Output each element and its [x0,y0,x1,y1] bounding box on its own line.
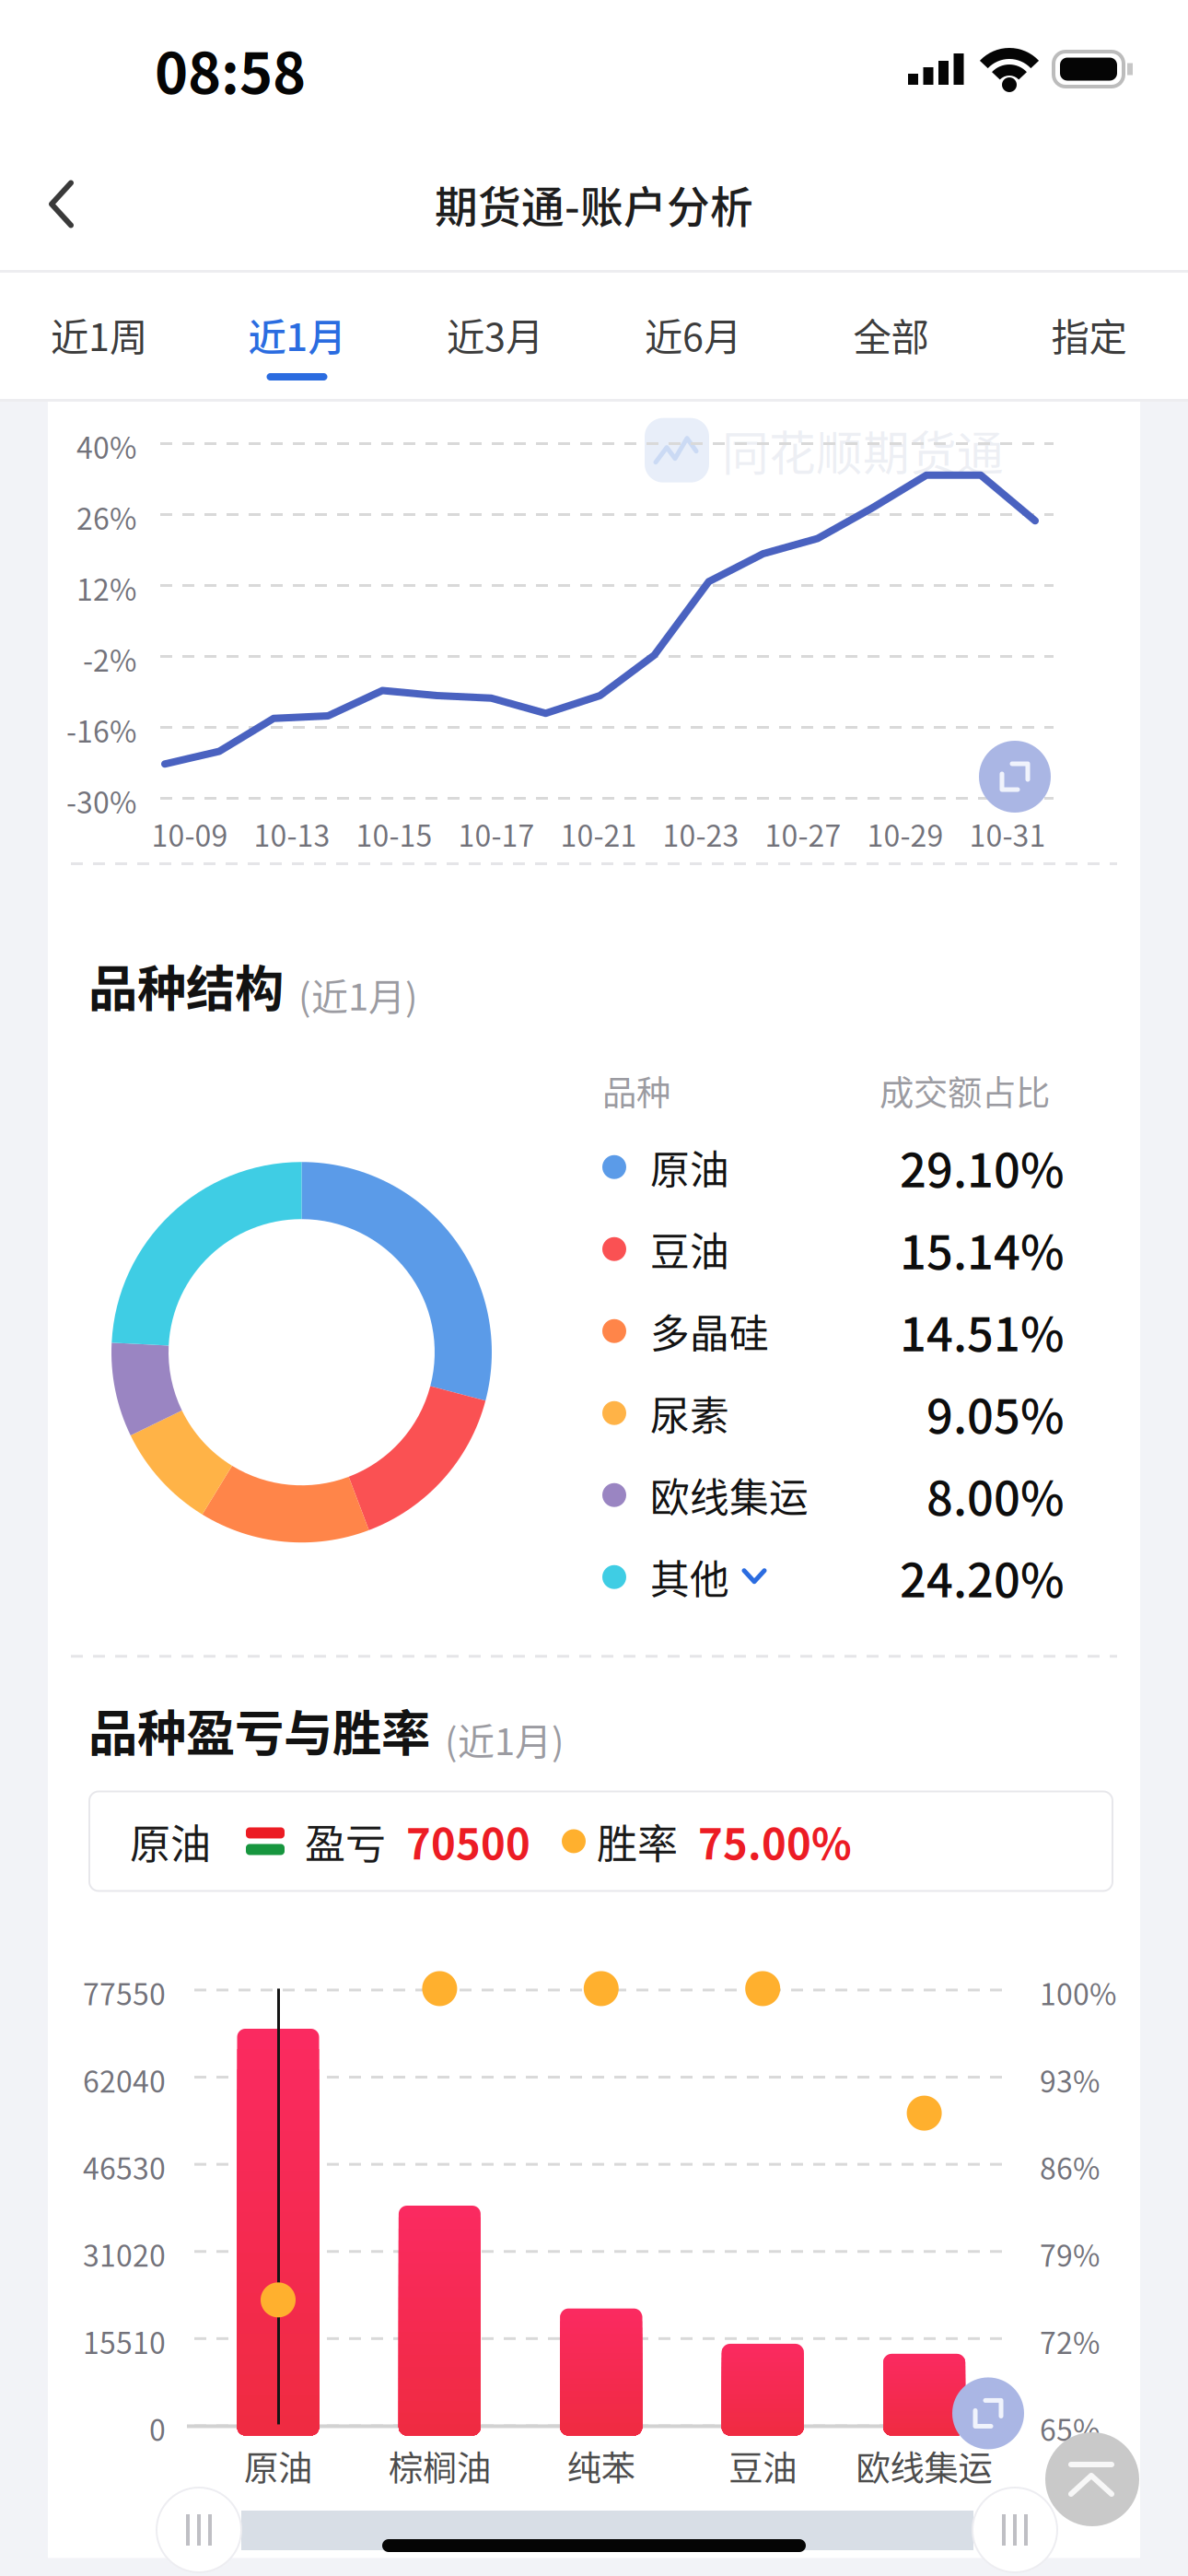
staticText: 9.05% [926,1379,1065,1447]
staticText: (近1月) [298,968,418,1021]
staticText: 29.10% [900,1133,1065,1201]
staticText: 14.51% [900,1297,1065,1365]
staticText: 10-21 [560,813,637,855]
staticText: 胜率 [597,1812,678,1871]
staticText: 豆油 [729,2441,797,2491]
staticText: 0 [149,2407,166,2450]
staticText: 期货通-账户分析 [435,173,753,235]
staticText: 40% [76,425,136,467]
staticText: 10-31 [969,813,1046,855]
staticText: 24.20% [900,1543,1065,1611]
staticText: 近3月 [447,307,543,362]
button[interactable]: 近3月 [396,273,594,399]
staticText: 70500 [406,1811,530,1871]
staticText: 12% [76,567,136,609]
staticText: 10-13 [254,813,330,855]
staticText: 其他 [650,1549,729,1605]
staticText: 75.00% [698,1811,852,1871]
button[interactable]: 全部 [792,273,990,399]
staticText: 72% [1040,2320,1100,2362]
staticText: -2% [83,638,136,680]
staticText: 棕榈油 [389,2441,491,2491]
staticText: 欧线集运 [650,1467,809,1523]
staticText: 8.00% [926,1461,1065,1529]
staticText: 08:58 [155,28,306,110]
staticText: 79% [1040,2233,1100,2275]
staticText: 62040 [83,2058,166,2101]
staticText: 指定 [1051,307,1127,362]
staticText: 多晶硅 [650,1303,769,1359]
staticText: 10-29 [867,813,943,855]
staticText: 86% [1040,2145,1100,2188]
button[interactable]: 返回 [0,154,102,254]
staticText: 原油 [130,1812,211,1871]
staticText: 65% [1040,2407,1100,2450]
staticText: 46530 [83,2145,166,2188]
staticText: 10-09 [151,813,228,855]
button[interactable]: 近6月 [594,273,792,399]
staticText: 10-23 [663,813,739,855]
staticText: 26% [76,496,136,538]
staticText: 全部 [853,307,929,362]
staticText: 15510 [83,2320,166,2362]
staticText: 品种 [602,1066,670,1116]
staticText: 近1周 [51,307,147,362]
button[interactable]: 指定 [990,273,1188,399]
staticText: 尿素 [650,1385,729,1441]
staticText: 品种盈亏与胜率 [88,1694,430,1766]
button[interactable]: 近1周 [0,273,198,399]
staticText: -16% [66,708,136,751]
staticText: -30% [66,779,136,822]
staticText: 原油 [244,2441,312,2491]
staticText: (近1月) [445,1712,565,1766]
staticText: 10-15 [356,813,432,855]
staticText: 10-27 [765,813,841,855]
staticText: 近1月 [248,307,346,362]
staticText: 近6月 [645,307,741,362]
button[interactable]: 右侧滑块 [973,2488,1057,2572]
button[interactable]: 回到顶部 [1045,2432,1139,2526]
staticText: 15.14% [900,1215,1065,1283]
button[interactable]: 全屏显示 [952,2377,1024,2449]
staticText: 品种结构 [88,950,284,1021]
button[interactable]: 近1月 [198,273,396,399]
button[interactable]: 左侧滑块 [157,2488,241,2572]
staticText: 豆油 [650,1221,729,1277]
staticText: 欧线集运 [856,2441,992,2491]
staticText: 盈亏 [305,1812,386,1871]
staticText: 原油 [650,1139,729,1195]
staticText: 100% [1040,1971,1116,2014]
staticText: 31020 [83,2233,166,2275]
staticText: 同花顺期货通 [722,416,1004,484]
staticText: 纯苯 [567,2441,635,2491]
staticText: 77550 [83,1971,166,2014]
staticText: 10-17 [458,813,535,855]
staticText: 成交额占比 [879,1066,1050,1116]
button[interactable]: 全屏显示 [979,741,1051,813]
staticText: 93% [1040,2058,1100,2101]
